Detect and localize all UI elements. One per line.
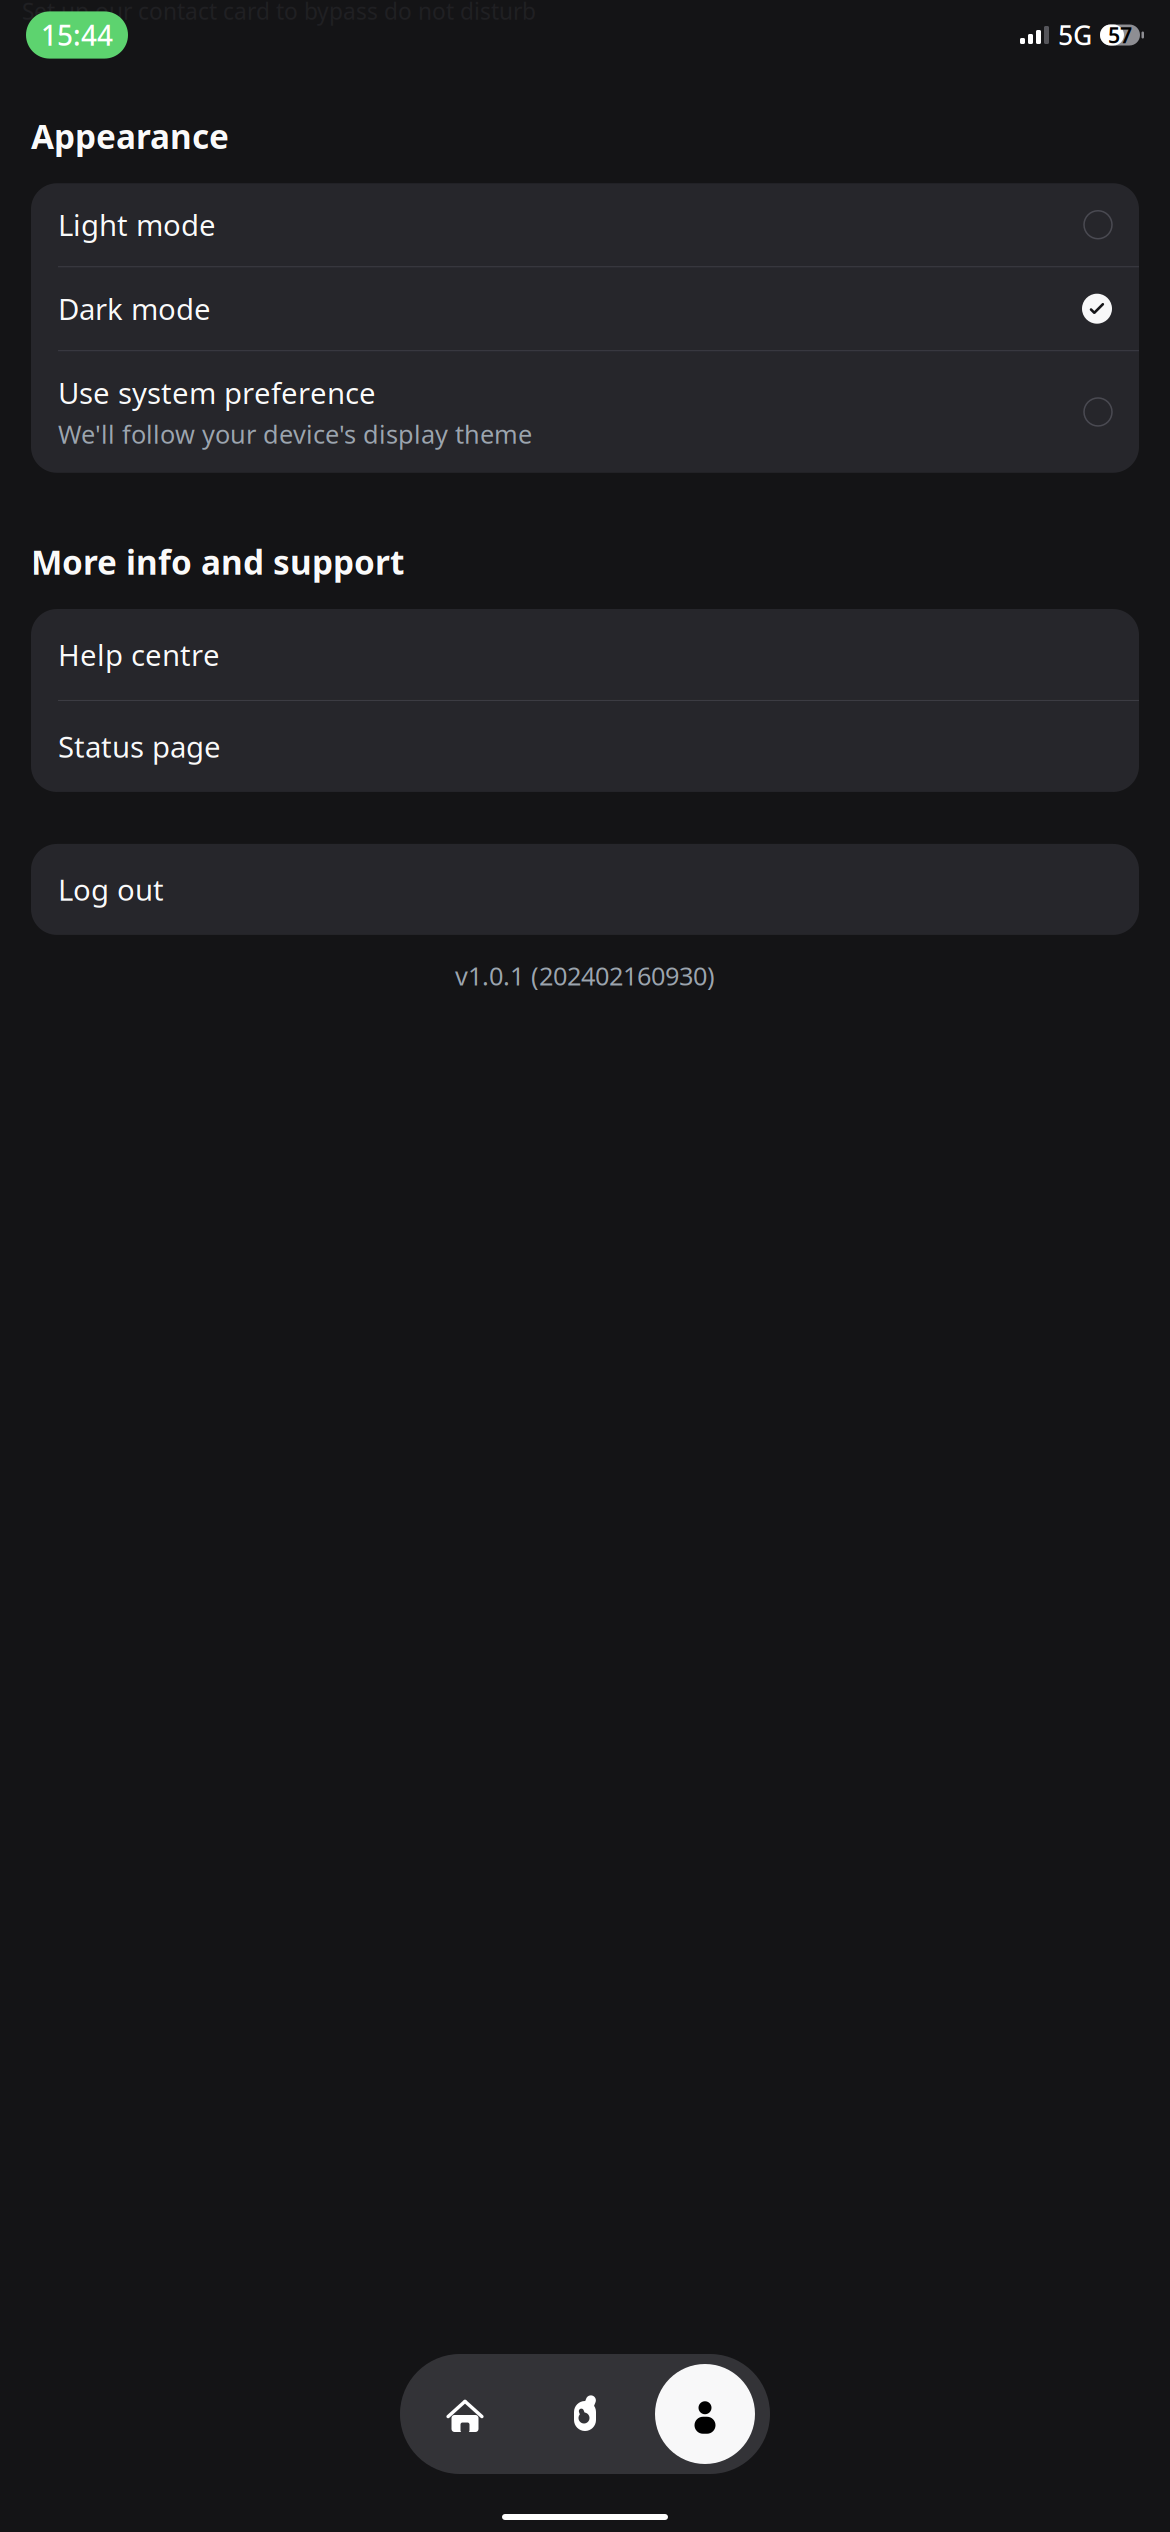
staticText: Set up our contact card to bypass do not… <box>22 0 536 26</box>
staticText: 5G <box>1058 17 1092 53</box>
button[interactable]: Profile <box>645 2354 765 2474</box>
staticText: We'll follow your device's display theme <box>58 417 532 451</box>
staticText: 57 <box>1108 21 1132 49</box>
staticText: Appearance <box>31 114 229 158</box>
staticText: Status page <box>58 727 221 766</box>
staticText: Light mode <box>58 205 216 244</box>
button[interactable]: Log out <box>31 844 1139 935</box>
button[interactable]: Light mode <box>31 183 1139 266</box>
staticText: Dark mode <box>58 289 211 328</box>
staticText: 15:44 <box>41 16 113 54</box>
staticText: Use system preference <box>58 373 376 412</box>
button[interactable]: Status page <box>31 701 1139 792</box>
staticText: Help centre <box>58 635 220 674</box>
button[interactable]: Use system preference <box>31 351 1139 473</box>
staticText: v1.0.1 (202402160930) <box>455 959 715 992</box>
button[interactable]: Dark mode <box>31 267 1139 350</box>
staticText: Log out <box>58 870 164 909</box>
button[interactable]: Home <box>405 2354 525 2474</box>
staticText: More info and support <box>31 540 404 584</box>
button[interactable]: Help centre <box>31 609 1139 700</box>
button[interactable]: Trending <box>525 2354 645 2474</box>
